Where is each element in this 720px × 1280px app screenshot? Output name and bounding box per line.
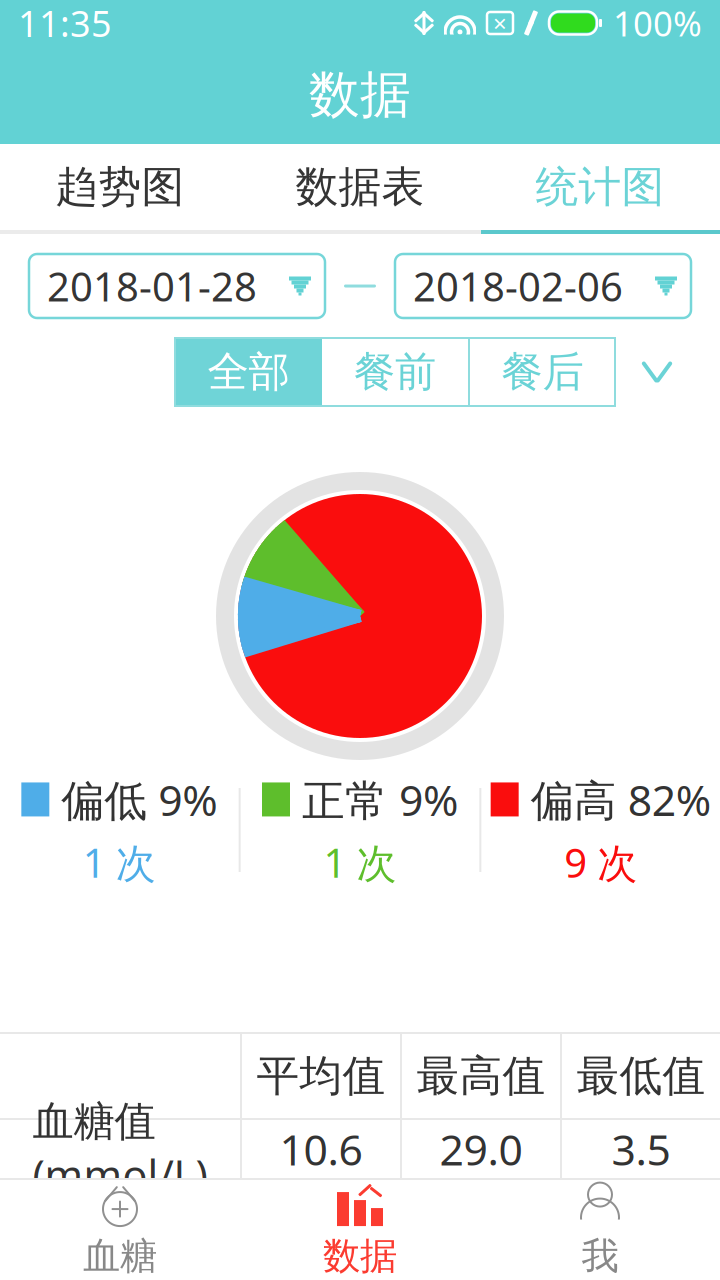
button[interactable]: 餐后 [470,338,615,406]
staticText: 血糖 [83,1233,157,1279]
button[interactable]: 2018-02-06 [395,254,691,318]
staticText: × [493,7,507,39]
staticText: 我 [581,1233,618,1279]
button[interactable]: 展开更多筛选 [635,350,679,394]
staticText: 正常 9% [302,771,458,828]
button[interactable]: 餐前 [322,338,468,406]
button[interactable]: 数据表 [240,144,480,230]
button[interactable]: 2018-01-28 [29,254,325,318]
staticText: 餐后 [501,347,583,397]
staticText: 数据 [309,64,411,126]
staticText: 全部 [207,347,289,397]
button[interactable]: 我 [480,1180,720,1280]
staticText: 数据 [323,1233,397,1279]
staticText: 偏高 82% [531,771,711,828]
staticText: 3.5 [611,1121,670,1177]
staticText: 1 次 [323,836,396,889]
staticText: 10.6 [279,1121,362,1177]
button[interactable]: 数据 [240,1180,480,1280]
staticText: 2018-02-06 [413,259,623,312]
staticText: 趋势图 [55,161,184,213]
staticText: 餐前 [354,347,436,397]
staticText: 29.0 [439,1121,522,1177]
staticText: 血糖值(mmol/L) [32,1096,207,1202]
staticText: 最高值 [416,1050,545,1102]
staticText: 1 次 [83,836,156,889]
staticText: 平均值 [256,1050,385,1102]
button[interactable]: 趋势图 [0,144,240,230]
staticText: 2018-01-28 [47,259,257,312]
staticText: 偏低 9% [61,771,217,828]
staticText: 11:35 [18,0,112,47]
staticText: 数据表 [295,161,424,213]
staticText: 9 次 [564,836,637,889]
button[interactable]: 统计图 [480,144,720,230]
staticText: 最低值 [576,1050,705,1102]
button[interactable]: 全部 [175,338,322,406]
staticText: 100% [613,0,702,46]
button[interactable]: 血糖 [0,1180,240,1280]
staticText: 统计图 [535,161,664,213]
